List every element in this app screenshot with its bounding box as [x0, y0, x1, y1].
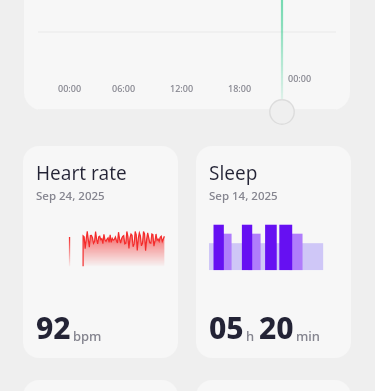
staticText: 00:00 — [288, 72, 312, 84]
button[interactable]: 100 — [24, 0, 350, 110]
button[interactable]: Sleep — [196, 146, 351, 358]
staticText: Sleep — [209, 160, 258, 186]
staticText: 06:00 — [112, 82, 136, 94]
staticText: bpm — [73, 327, 102, 345]
button[interactable]: Heart rate — [23, 146, 178, 358]
staticText: min — [296, 327, 320, 345]
staticText: h — [246, 327, 255, 345]
staticText: 12:00 — [170, 82, 194, 94]
staticText: 20 — [259, 307, 294, 348]
staticText: Sep 24, 2025 — [36, 188, 105, 204]
staticText: Sep 14, 2025 — [209, 188, 278, 204]
staticText: 18:00 — [228, 82, 252, 94]
staticText: 92 — [36, 307, 71, 348]
button[interactable]: Resize chart — [269, 99, 295, 125]
staticText: 05 — [209, 307, 244, 348]
staticText: 00:00 — [58, 82, 82, 94]
staticText: Heart rate — [36, 160, 127, 186]
